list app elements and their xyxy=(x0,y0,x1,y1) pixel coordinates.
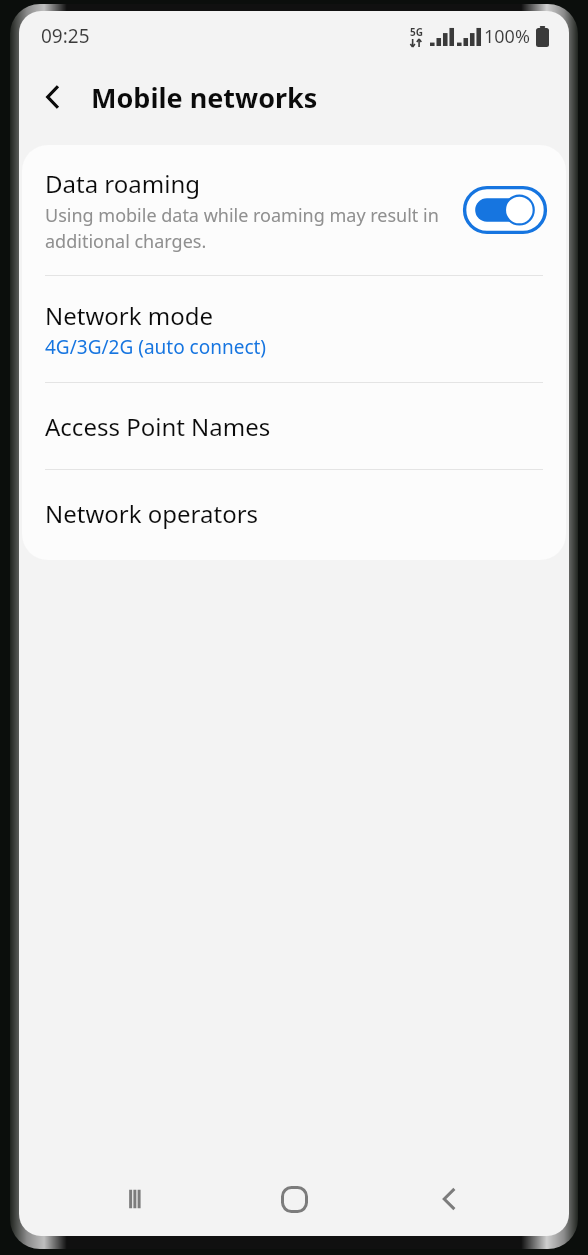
button[interactable]: Data roaming xyxy=(22,145,566,275)
button[interactable]: Data roaming toggle xyxy=(463,186,547,234)
staticText: Access Point Names xyxy=(45,410,271,443)
staticText: 5G xyxy=(410,25,423,39)
staticText: Data roaming xyxy=(45,167,200,200)
button[interactable]: Back xyxy=(414,1164,484,1234)
button[interactable]: Recents xyxy=(104,1164,174,1234)
staticText: 4G/3G/2G (auto connect) xyxy=(45,334,267,360)
staticText: Network mode xyxy=(45,299,214,332)
button[interactable]: Network mode xyxy=(22,276,566,382)
button[interactable]: Access Point Names xyxy=(22,383,566,469)
button[interactable]: Home xyxy=(259,1164,329,1234)
button[interactable]: Network operators xyxy=(22,470,566,556)
staticText: 09:25 xyxy=(41,23,90,49)
button[interactable]: Back xyxy=(25,69,81,125)
staticText: 100% xyxy=(484,24,530,49)
staticText: Network operators xyxy=(45,497,259,530)
staticText: Mobile networks xyxy=(91,79,318,116)
staticText: Using mobile data while roaming may resu… xyxy=(45,203,455,254)
